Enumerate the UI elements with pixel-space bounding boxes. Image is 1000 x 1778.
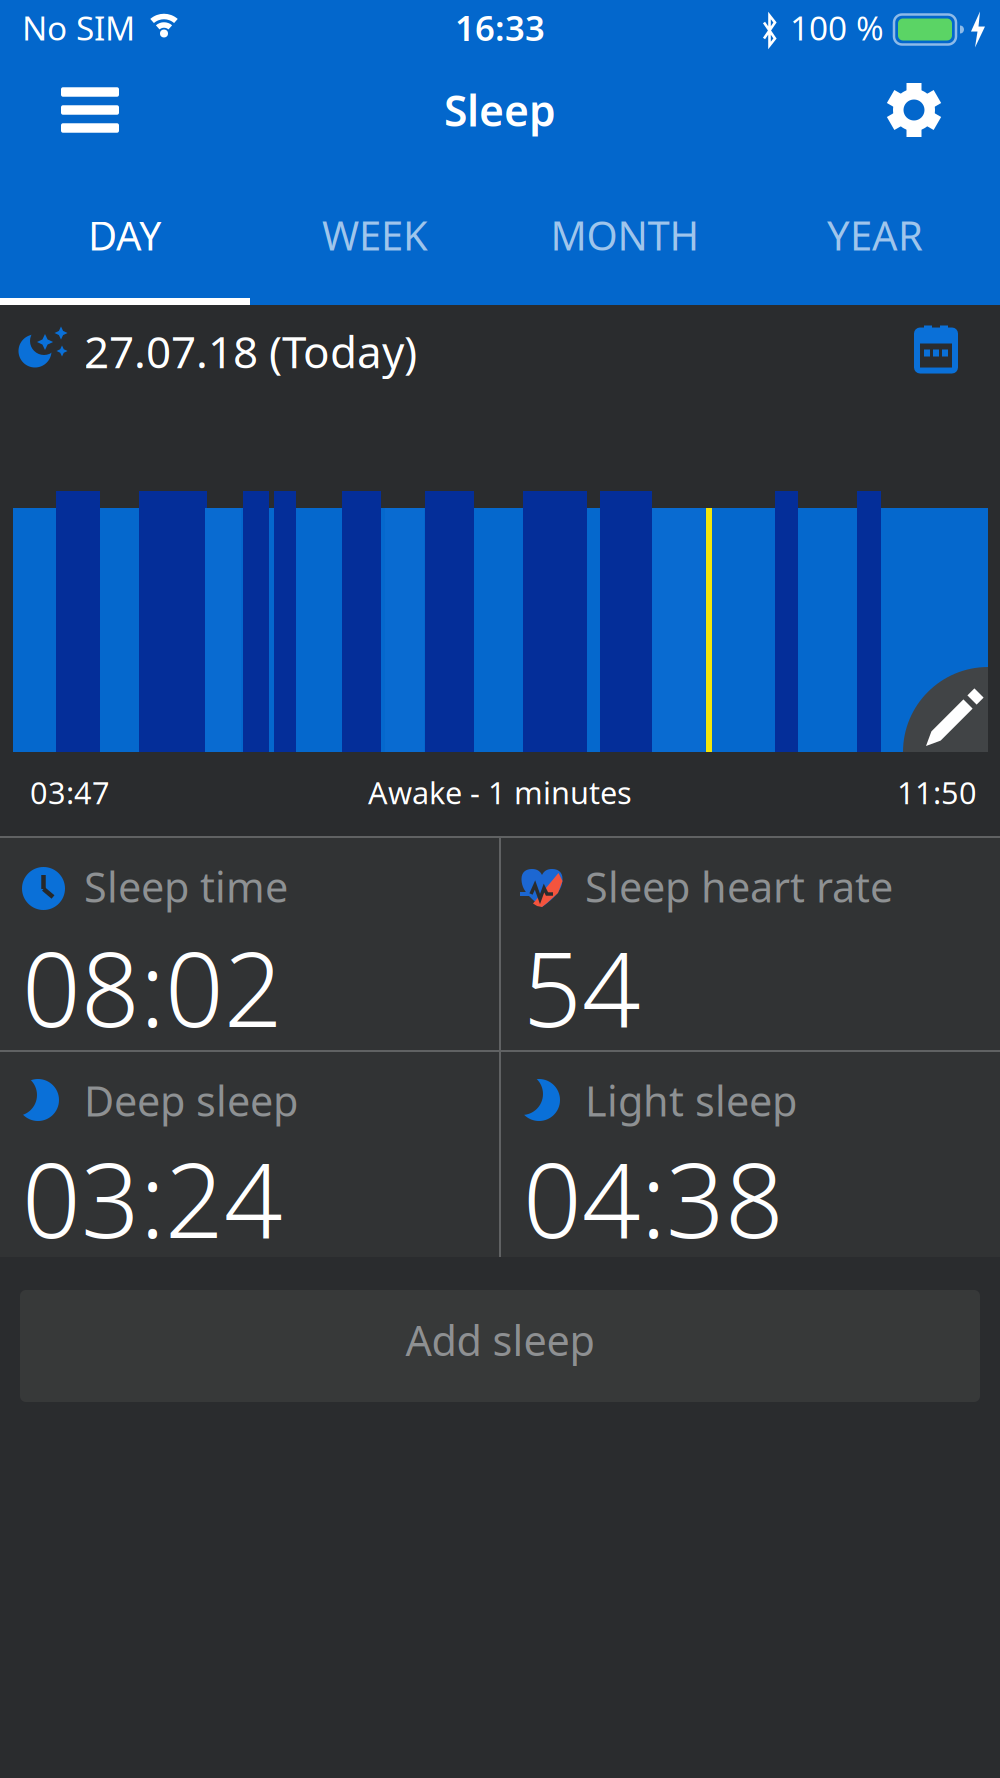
button[interactable]: Settings (887, 83, 1000, 137)
staticText: WEEK (322, 208, 428, 261)
staticText: DAY (88, 208, 162, 261)
staticText: 54 (523, 919, 641, 1055)
staticText: Sleep (444, 82, 556, 138)
staticText: 04:38 (523, 1130, 784, 1266)
button[interactable]: DAY (0, 165, 250, 305)
staticText: No SIM (22, 5, 135, 50)
staticText: 11:50 (897, 772, 977, 813)
button[interactable]: Edit sleep (903, 667, 1000, 837)
staticText: Awake - 1 minutes (368, 772, 632, 813)
staticText: Light sleep (585, 1073, 797, 1128)
button[interactable]: WEEK (250, 165, 500, 305)
staticText: YEAR (827, 208, 923, 261)
button[interactable]: YEAR (750, 165, 1000, 305)
staticText: MONTH (550, 208, 699, 261)
button[interactable]: MONTH (500, 165, 750, 305)
staticText: Add sleep (405, 1313, 594, 1367)
staticText: 03:24 (22, 1130, 283, 1266)
button[interactable]: Menu (0, 87, 119, 133)
staticText: Deep sleep (84, 1073, 298, 1128)
staticText: 27.07.18 (Today) (84, 322, 417, 380)
staticText: 100 % (790, 5, 884, 50)
staticText: 08:02 (22, 919, 283, 1055)
button[interactable]: Pick date (917, 323, 955, 368)
staticText: 03:47 (30, 772, 110, 813)
button[interactable]: Add sleep (20, 1290, 980, 1402)
staticText: Sleep time (84, 859, 288, 914)
staticText: 16:33 (455, 4, 545, 50)
staticText: Sleep heart rate (585, 859, 893, 914)
